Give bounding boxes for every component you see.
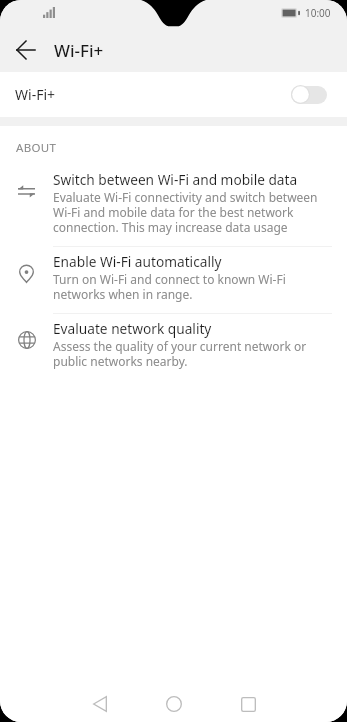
staticText: Wi-Fi+ xyxy=(15,85,56,104)
button[interactable]: Back xyxy=(4,28,48,72)
staticText: Evaluate network quality xyxy=(53,319,212,338)
staticText: Wi-Fi+ xyxy=(54,39,104,62)
button[interactable]: Wi-Fi+ xyxy=(0,72,347,117)
button[interactable]: Evaluate network quality xyxy=(0,314,347,380)
button[interactable]: Recents xyxy=(211,679,285,722)
button[interactable]: Switch between Wi-Fi and mobile data xyxy=(0,165,347,247)
staticText: Evaluate Wi-Fi connectivity and switch b… xyxy=(53,189,333,236)
staticText: Enable Wi-Fi automatically xyxy=(53,252,222,271)
staticText: Turn on Wi-Fi and connect to known Wi-Fi… xyxy=(53,271,333,303)
staticText: Assess the quality of your current netwo… xyxy=(53,338,333,370)
staticText: Switch between Wi-Fi and mobile data xyxy=(53,170,298,189)
staticText: 10:00 xyxy=(305,6,331,20)
button[interactable]: Home xyxy=(137,679,211,722)
button[interactable]: Back xyxy=(63,679,137,722)
button[interactable]: Enable Wi-Fi automatically xyxy=(0,247,347,314)
staticText: ABOUT xyxy=(16,140,57,156)
